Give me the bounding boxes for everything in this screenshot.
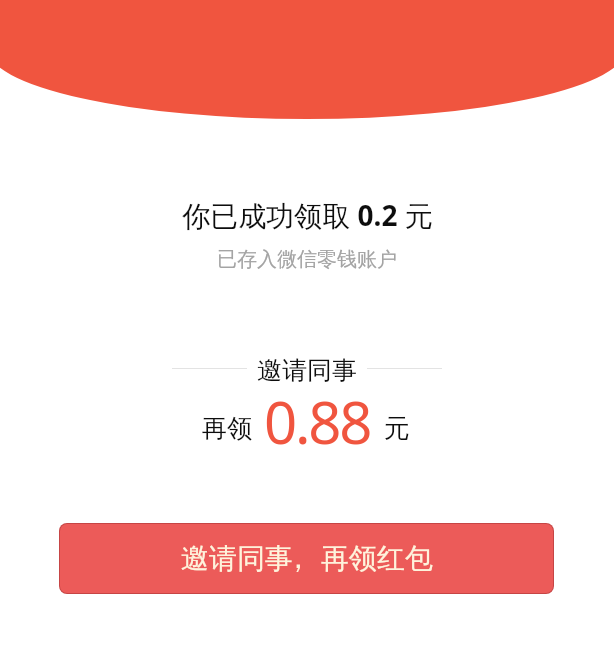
staticText: 元 [384,412,410,445]
staticText: 你已成功领取 0.2 元 [182,196,433,234]
staticText: 已存入微信零钱账户 [217,247,397,272]
staticText: ， [284,541,312,576]
staticText: 邀请同事 [257,355,357,386]
staticText: 再领红包 [321,541,433,576]
staticText: 邀请同事 [181,541,293,576]
staticText: 0.88 [264,382,371,461]
staticText: 再领 [202,413,252,444]
button[interactable]: 邀请同事 [60,524,553,593]
